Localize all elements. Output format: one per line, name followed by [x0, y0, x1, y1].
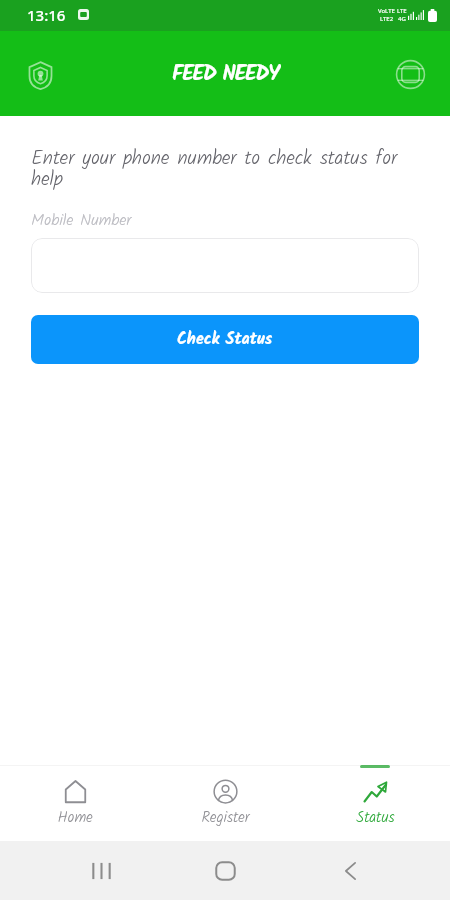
button[interactable]: Admin login [18, 53, 62, 97]
staticText: Check Status [177, 327, 273, 353]
button[interactable]: Recent apps [77, 847, 125, 895]
staticText: Status [356, 806, 395, 830]
staticText: 4G [398, 15, 406, 23]
staticText: Enter your phone number to check status … [31, 143, 403, 196]
button[interactable]: Home [0, 766, 150, 817]
staticText: LTE2 [380, 15, 394, 23]
staticText: LTE [397, 7, 407, 15]
staticText: Register [201, 806, 250, 830]
button[interactable]: Change language [388, 52, 432, 96]
staticText: Mobile Number [31, 208, 132, 234]
button[interactable]: Status [300, 766, 450, 817]
staticText: VoLTE [378, 7, 395, 15]
button[interactable] [31, 238, 419, 293]
button[interactable]: Back [326, 847, 374, 895]
staticText: 13:16 [27, 5, 66, 25]
button[interactable]: Register [150, 766, 300, 817]
button[interactable]: Check Status [31, 315, 419, 364]
staticText: Home [57, 806, 93, 830]
button[interactable]: Home [201, 847, 249, 895]
staticText: FEED NEEDY [172, 58, 279, 91]
